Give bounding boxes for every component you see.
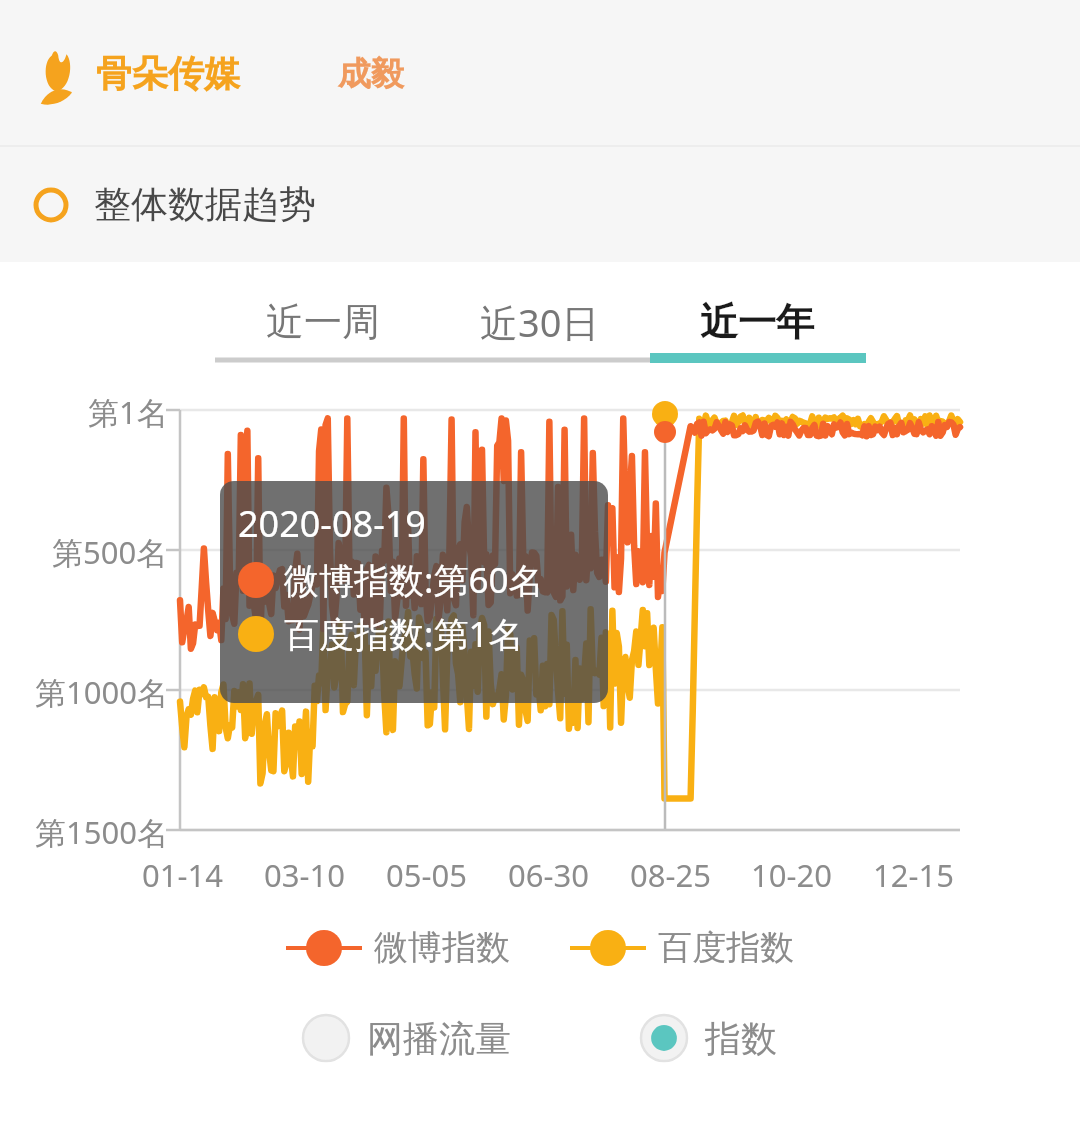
staticText: 成毅 — [338, 53, 404, 95]
button[interactable]: 近30日 — [431, 262, 648, 382]
staticText: 微博指数:第60名 — [284, 556, 544, 604]
staticText: 百度指数:第1名 — [284, 610, 524, 658]
button[interactable]: 微博指数 — [286, 926, 510, 969]
staticText: 近30日 — [480, 296, 600, 348]
button[interactable]: 近一年 — [648, 262, 865, 382]
staticText: 微博指数 — [374, 926, 510, 969]
staticText: 第1500名 — [35, 811, 168, 853]
staticText: 网播流量 — [367, 1016, 511, 1061]
staticText: 06-30 — [508, 854, 589, 896]
staticText: 近一周 — [266, 298, 380, 346]
staticText: 近一年 — [700, 298, 814, 346]
staticText: 01-14 — [142, 854, 223, 896]
staticText: 2020-08-19 — [238, 499, 426, 548]
staticText: 第1000名 — [35, 671, 168, 713]
staticText: 指数 — [705, 1016, 777, 1061]
staticText: 12-15 — [873, 854, 954, 896]
staticText: 08-25 — [630, 854, 711, 896]
button[interactable]: 百度指数 — [570, 926, 794, 969]
staticText: 第500名 — [52, 531, 168, 573]
staticText: 整体数据趋势 — [94, 181, 316, 228]
button[interactable]: 指数 — [641, 1015, 777, 1061]
staticText: 05-05 — [386, 854, 467, 896]
staticText: 百度指数 — [658, 926, 794, 969]
staticText: 第1名 — [88, 391, 168, 433]
staticText: 10-20 — [751, 854, 832, 896]
button[interactable]: 近一周 — [215, 262, 431, 382]
button[interactable]: 整体数据趋势 — [0, 147, 1080, 262]
button[interactable]: 网播流量 — [303, 1015, 511, 1061]
staticText: 骨朵传媒 — [96, 51, 240, 96]
staticText: 03-10 — [264, 854, 345, 896]
